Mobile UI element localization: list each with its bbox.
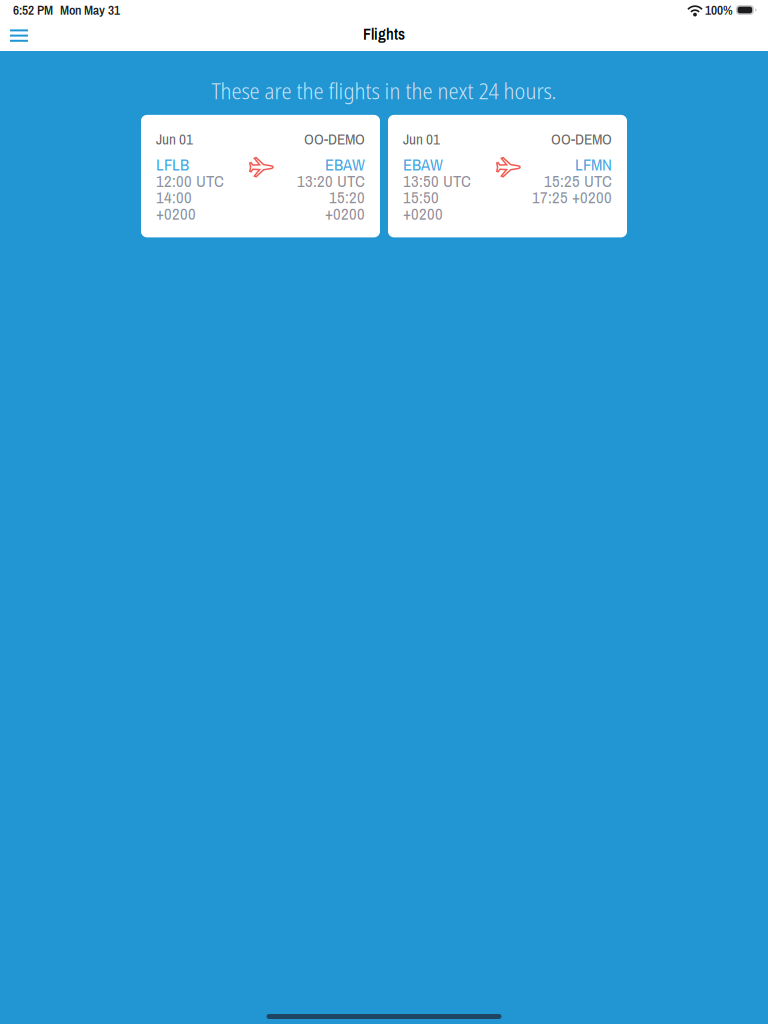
staticText: 13:20 UTC	[297, 170, 365, 192]
staticText: Jun 01	[156, 129, 193, 149]
staticText: Mon May 31	[60, 1, 120, 19]
staticText: OO-DEMO	[304, 129, 365, 149]
button[interactable]: Menu	[0, 20, 42, 51]
staticText: 17:25 +0200	[532, 186, 612, 208]
button[interactable]: Jun 01	[141, 115, 380, 237]
staticText: LFLB	[156, 153, 189, 176]
staticText: 100%	[705, 1, 733, 19]
staticText: +0200	[403, 202, 443, 225]
staticText: 15:25 UTC	[544, 170, 612, 192]
staticText: EBAW	[325, 153, 365, 176]
staticText: OO-DEMO	[551, 129, 612, 149]
staticText: 14:00	[156, 186, 192, 208]
staticText: 13:50 UTC	[403, 170, 471, 192]
staticText: Jun 01	[403, 129, 440, 149]
staticText: These are the flights in the next 24 hou…	[211, 75, 556, 106]
staticText: +0200	[325, 202, 365, 225]
staticText: 15:20	[329, 186, 365, 208]
staticText: +0200	[156, 202, 196, 225]
staticText: 12:00 UTC	[156, 170, 224, 192]
staticText: 6:52 PM	[13, 1, 53, 19]
button[interactable]: Jun 01	[388, 115, 627, 237]
staticText: LFMN	[575, 153, 612, 176]
staticText: Flights	[363, 23, 405, 45]
staticText: 15:50	[403, 186, 439, 208]
staticText: EBAW	[403, 153, 443, 176]
